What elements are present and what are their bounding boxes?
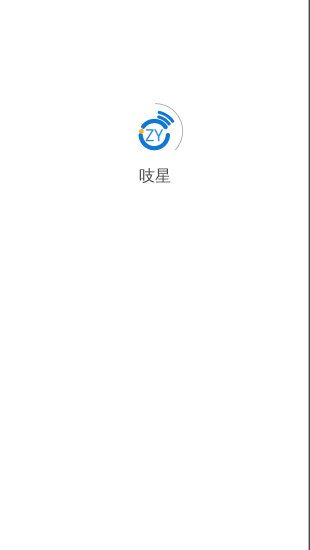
staticText: 吱星 [139,166,171,186]
staticText: ZY [145,124,163,145]
